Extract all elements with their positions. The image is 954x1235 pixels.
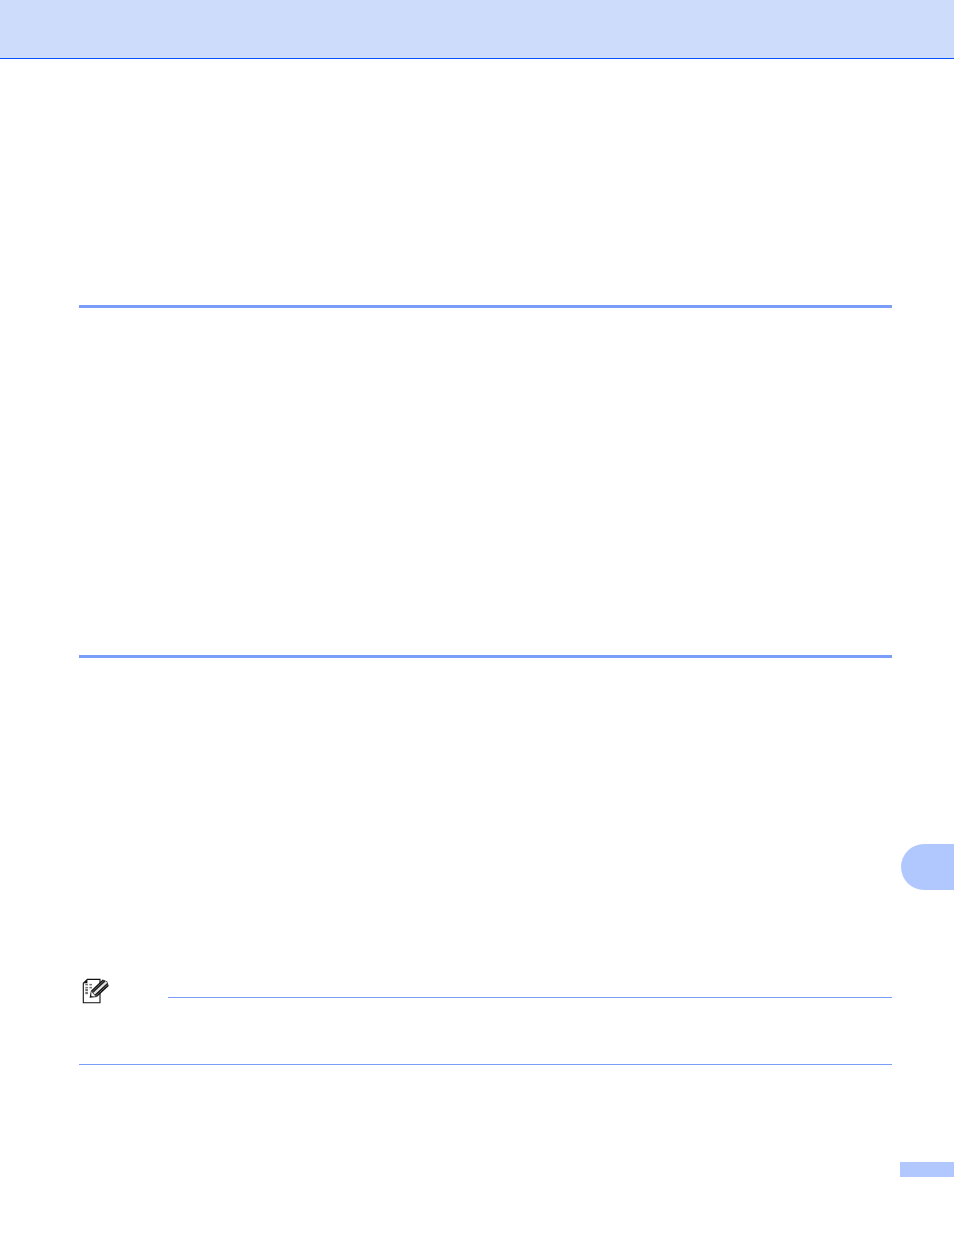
button[interactable]: Chapter tab <box>901 844 954 890</box>
button[interactable]: Note <box>82 977 110 1005</box>
